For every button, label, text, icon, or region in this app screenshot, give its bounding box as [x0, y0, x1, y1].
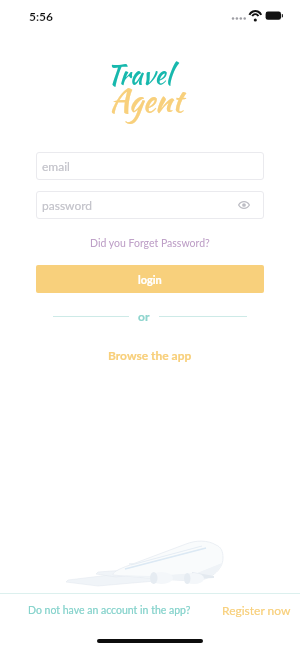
staticText: Travel: [106, 55, 172, 94]
button[interactable]: Browse the app: [102, 346, 198, 364]
button[interactable]: Did you Forget Password?: [84, 235, 216, 251]
button[interactable]: email: [36, 152, 264, 180]
staticText: or: [138, 309, 150, 323]
button[interactable]: Register now: [222, 603, 291, 617]
staticText: login: [138, 273, 162, 286]
staticText: 5:56: [29, 9, 53, 23]
staticText: Agent: [110, 78, 183, 123]
staticText: password: [42, 198, 93, 212]
button[interactable]: password: [36, 191, 264, 219]
button[interactable]: Show password: [235, 196, 253, 214]
button[interactable]: Do not have an account in the app?: [28, 604, 191, 617]
staticText: email: [42, 159, 70, 173]
button[interactable]: login: [36, 265, 264, 293]
